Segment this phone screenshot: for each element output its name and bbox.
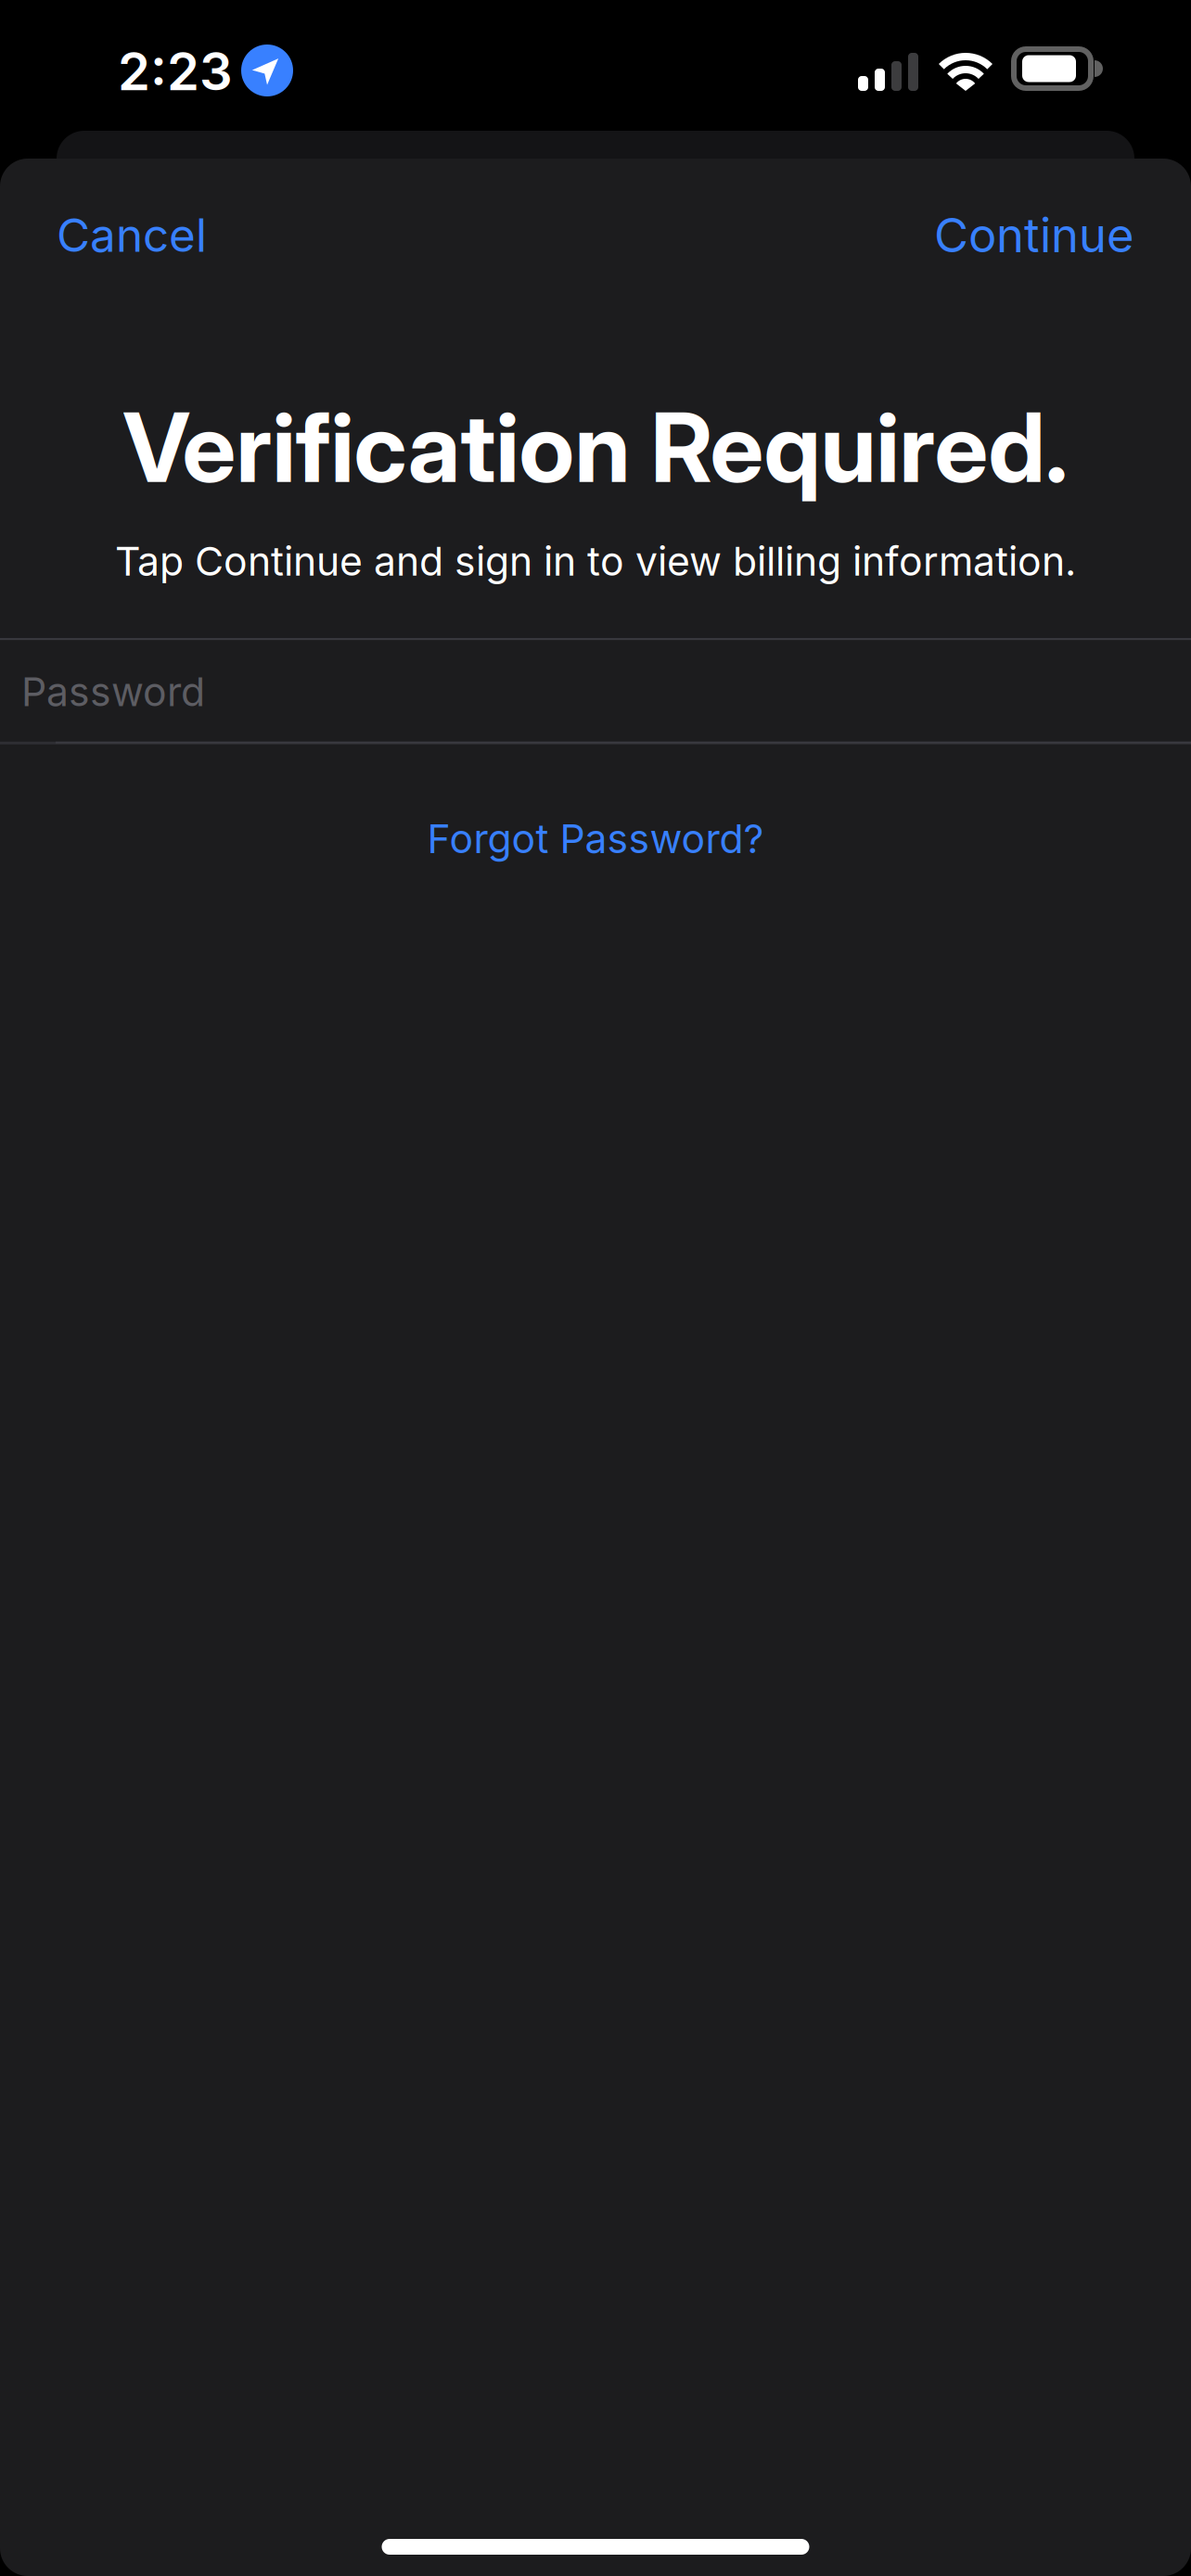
button[interactable]: Password: [0, 640, 1191, 742]
button[interactable]: Continue: [891, 159, 1191, 312]
staticText: 2:23: [118, 40, 233, 103]
staticText: Password: [21, 668, 205, 716]
button[interactable]: Cancel: [0, 159, 250, 311]
staticText: Cancel: [57, 208, 207, 263]
staticText: Verification Required.: [123, 390, 1068, 505]
staticText: Tap Continue and sign in to view billing…: [115, 537, 1076, 585]
staticText: Continue: [934, 207, 1134, 264]
button[interactable]: Forgot Password?: [0, 794, 1191, 883]
staticText: Forgot Password?: [427, 815, 764, 863]
